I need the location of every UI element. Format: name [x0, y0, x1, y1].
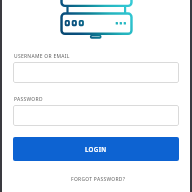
- staticText: LOGIN: [85, 145, 107, 153]
- staticText: FORGOT PASSWORD?: [71, 176, 126, 183]
- button[interactable]: [13, 62, 179, 83]
- other: Server: [60, 0, 133, 40]
- staticText: PASSWORD: [14, 96, 43, 103]
- staticText: USERNAME OR EMAIL: [14, 53, 70, 60]
- button[interactable]: LOGIN: [13, 137, 179, 161]
- button[interactable]: FORGOT PASSWORD?: [71, 176, 126, 183]
- button[interactable]: [13, 105, 179, 126]
